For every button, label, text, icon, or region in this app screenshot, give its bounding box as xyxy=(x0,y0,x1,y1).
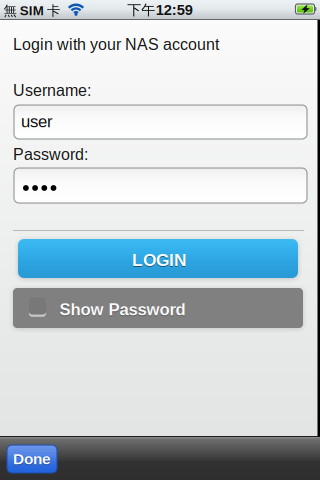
staticText: 無 xyxy=(4,2,17,19)
staticText: LOGIN xyxy=(132,251,187,271)
staticText: SIM xyxy=(20,3,44,18)
staticText: 12:59 xyxy=(156,2,193,18)
button[interactable]: LOGIN xyxy=(18,239,298,278)
staticText: LOGIN xyxy=(132,250,187,270)
staticText: 下午 xyxy=(127,1,155,19)
staticText: user xyxy=(21,112,53,131)
staticText: 卡 xyxy=(47,2,60,19)
staticText: Done xyxy=(13,451,51,468)
staticText: Password: xyxy=(13,146,88,163)
staticText: Show Password xyxy=(59,300,185,319)
button[interactable]: Show Password xyxy=(13,288,303,328)
staticText: Show Password xyxy=(59,301,185,320)
button[interactable]: Done xyxy=(7,445,57,473)
staticText: Login with your NAS account xyxy=(13,36,219,53)
staticText: Username: xyxy=(13,82,91,99)
staticText: Done xyxy=(13,450,51,467)
